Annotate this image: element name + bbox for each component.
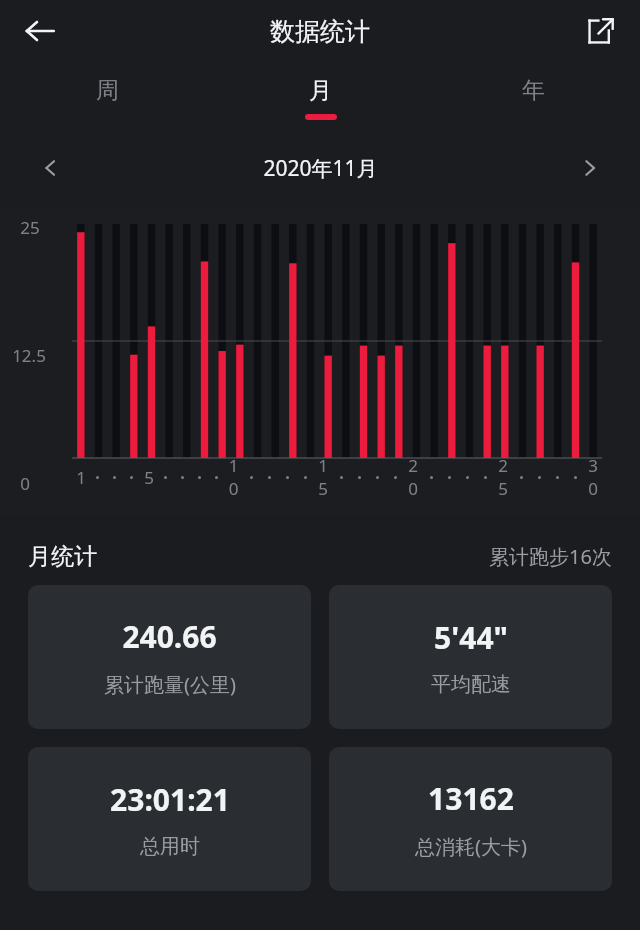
staticText: 25 bbox=[494, 454, 512, 500]
button[interactable]: Next month bbox=[568, 146, 612, 190]
staticText: 5 bbox=[144, 466, 154, 489]
staticText: 平均配速 bbox=[431, 672, 511, 697]
button[interactable]: 周 bbox=[0, 62, 214, 140]
staticText: 1 bbox=[76, 466, 86, 489]
button[interactable]: 23:01:21 bbox=[28, 747, 311, 891]
staticText: 12.5 bbox=[12, 344, 46, 367]
button[interactable]: Share bbox=[576, 6, 626, 56]
button[interactable]: Previous month bbox=[28, 146, 72, 190]
staticText: 23:01:21 bbox=[110, 779, 230, 820]
staticText: 13162 bbox=[428, 778, 514, 819]
button[interactable]: 13162 bbox=[329, 747, 612, 891]
staticText: 月统计 bbox=[28, 542, 97, 571]
staticText: 周 bbox=[96, 76, 119, 105]
button[interactable]: Back bbox=[14, 5, 66, 57]
staticText: 25 bbox=[20, 216, 40, 239]
staticText: 5'44" bbox=[434, 617, 508, 658]
staticText: 2020年11月 bbox=[263, 154, 378, 183]
staticText: 数据统计 bbox=[270, 16, 370, 47]
staticText: 240.66 bbox=[122, 616, 217, 657]
button[interactable]: 月 bbox=[214, 62, 427, 140]
staticText: 10 bbox=[225, 454, 242, 500]
button[interactable]: 5'44" bbox=[329, 585, 612, 729]
button[interactable]: 年 bbox=[427, 62, 640, 140]
staticText: 月 bbox=[309, 76, 332, 105]
staticText: 20 bbox=[404, 454, 422, 500]
staticText: 总消耗(大卡) bbox=[415, 833, 527, 860]
staticText: 累计跑量(公里) bbox=[104, 671, 236, 698]
staticText: 15 bbox=[314, 454, 332, 500]
staticText: 总用时 bbox=[140, 834, 200, 859]
staticText: 年 bbox=[522, 76, 545, 105]
staticText: 0 bbox=[20, 472, 30, 495]
staticText: 30 bbox=[584, 454, 602, 500]
staticText: 累计跑步16次 bbox=[489, 543, 612, 570]
button[interactable]: 240.66 bbox=[28, 585, 311, 729]
